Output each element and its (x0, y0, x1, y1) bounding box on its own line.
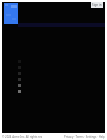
staticText: © 2024 Acme Inc. All rights res (2, 135, 43, 139)
button[interactable]: Sign in (91, 2, 103, 8)
staticText: Sign in (92, 3, 102, 7)
staticText: Privacy · Terms · Settings · Help (64, 135, 105, 139)
button[interactable] (4, 3, 18, 24)
